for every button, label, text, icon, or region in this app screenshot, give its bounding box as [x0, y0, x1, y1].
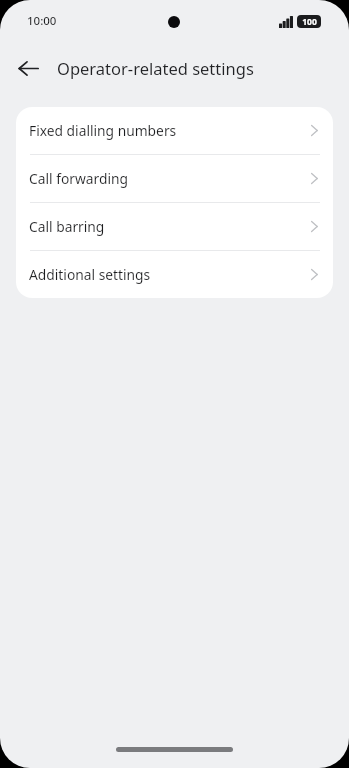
- staticText: Call forwarding: [29, 169, 129, 188]
- button[interactable]: Back: [8, 48, 48, 88]
- staticText: 10:00: [27, 13, 57, 29]
- other: Signal strength: [279, 16, 293, 28]
- button[interactable]: Call forwarding: [16, 155, 333, 202]
- staticText: Operator-related settings: [57, 57, 254, 79]
- staticText: Call barring: [29, 217, 105, 236]
- staticText: Fixed dialling numbers: [29, 121, 177, 140]
- button[interactable]: Call barring: [16, 203, 333, 250]
- staticText: 100: [302, 16, 317, 28]
- staticText: Additional settings: [29, 265, 151, 284]
- button[interactable]: Additional settings: [16, 251, 333, 298]
- button[interactable]: Fixed dialling numbers: [16, 107, 333, 154]
